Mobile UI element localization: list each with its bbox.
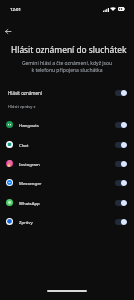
staticText: 12:01 [10,6,21,12]
staticText: Gemini hlásí a čte oznámení, když jsou k… [20,60,114,73]
button[interactable]: Hlásit oznámení [0,85,134,100]
staticText: Chat [19,142,29,148]
button[interactable]: Hangouts [0,115,134,134]
button[interactable]: Zapnuto [115,200,127,206]
staticText: Hlásit oznámení [8,90,42,96]
button[interactable]: Zprávy [0,212,134,231]
button[interactable]: WhatsApp [0,193,134,212]
staticText: Hlásit oznámení do sluchátek [11,44,127,55]
button[interactable]: Chat [0,135,134,154]
staticText: Zprávy [19,219,33,225]
button[interactable]: Zpět [1,24,15,38]
button[interactable]: Zapnuto [115,122,127,128]
button[interactable]: Zapnuto [115,180,127,186]
button[interactable]: Zapnuto [115,161,127,167]
staticText: Hangouts [19,122,39,128]
button[interactable]: Zapnuto [115,219,127,225]
button[interactable]: Zapnuto [115,90,127,96]
staticText: WhatsApp [19,200,40,206]
staticText: Messenger [19,180,42,186]
button[interactable]: Messenger [0,173,134,192]
button[interactable]: Instagram [0,154,134,173]
button[interactable]: Zapnuto [115,142,127,148]
staticText: Instagram [19,161,40,167]
staticText: Hlásit zprávy z [8,104,36,110]
